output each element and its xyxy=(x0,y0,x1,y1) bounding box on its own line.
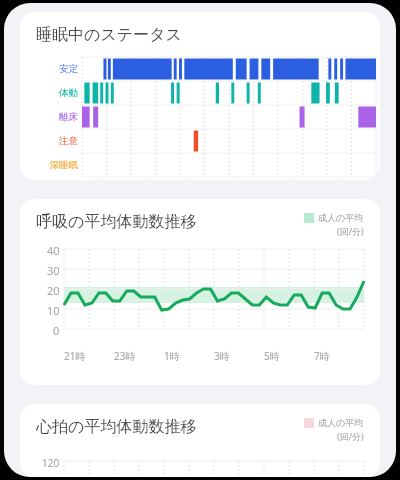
staticText: 成人の平均 xyxy=(318,417,364,428)
staticText: 離床 xyxy=(59,111,78,123)
staticText: 10 xyxy=(47,303,60,318)
button[interactable]: 呼吸の平均体動数推移 xyxy=(20,199,380,385)
staticText: 成人の平均 xyxy=(318,212,364,223)
staticText: 0 xyxy=(53,323,60,338)
staticText: 睡眠中のステータス xyxy=(36,25,182,45)
button[interactable]: 睡眠中のステータス xyxy=(20,12,380,180)
staticText: 1時 xyxy=(180,177,195,180)
staticText: 5時 xyxy=(278,177,293,180)
staticText: 7時 xyxy=(327,177,342,180)
staticText: 5時 xyxy=(264,349,280,363)
staticText: 3時 xyxy=(229,177,244,180)
staticText: 深睡眠 xyxy=(49,159,78,171)
staticText: 7時 xyxy=(314,349,330,363)
staticText: 30 xyxy=(47,263,60,278)
staticText: 23時 xyxy=(131,177,151,180)
staticText: 呼吸の平均体動数推移 xyxy=(36,212,197,232)
staticText: 3時 xyxy=(214,349,230,363)
staticText: 40 xyxy=(47,243,60,258)
staticText: 21時 xyxy=(64,349,86,363)
button[interactable]: 心拍の平均体動数推移 xyxy=(20,404,380,477)
staticText: 安定 xyxy=(59,63,78,75)
staticText: (回/分) xyxy=(337,225,364,237)
staticText: 体動 xyxy=(59,87,78,99)
staticText: (回/分) xyxy=(337,430,364,442)
staticText: 20 xyxy=(47,283,60,298)
staticText: 注意 xyxy=(59,135,78,147)
staticText: 1時 xyxy=(164,349,180,363)
staticText: 23時 xyxy=(114,349,136,363)
staticText: 120 xyxy=(42,456,60,470)
staticText: 21時 xyxy=(82,177,102,180)
staticText: 心拍の平均体動数推移 xyxy=(36,417,197,437)
